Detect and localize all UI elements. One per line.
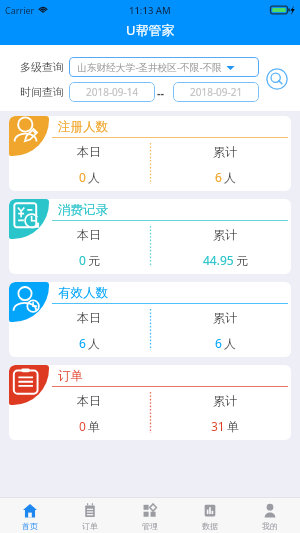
staticText: 2018-09-14 xyxy=(86,85,139,99)
staticText: 有效人数 xyxy=(58,285,108,301)
staticText: 消费记录 xyxy=(58,202,108,218)
staticText: 2018-09-21 xyxy=(190,85,243,99)
staticText: 6 xyxy=(79,335,86,351)
staticText: 订单 xyxy=(82,521,98,531)
staticText: 人 xyxy=(224,336,236,351)
staticText: 本日 xyxy=(77,310,101,325)
staticText: 累计 xyxy=(213,310,237,325)
staticText: 多级查询 xyxy=(20,60,64,74)
staticText: 44.95 xyxy=(203,252,234,268)
staticText: 首页 xyxy=(22,521,38,531)
staticText: 人 xyxy=(88,170,100,185)
button[interactable]: 管理 xyxy=(120,498,180,533)
button[interactable]: 山东财经大学-圣井校区-不限-不限 xyxy=(69,57,259,77)
staticText: 累计 xyxy=(213,227,237,242)
button[interactable]: Search xyxy=(266,68,288,90)
staticText: -- xyxy=(157,85,165,100)
staticText: 11:13 AM xyxy=(129,4,171,17)
staticText: 本日 xyxy=(77,144,101,159)
staticText: 时间查询 xyxy=(20,85,64,99)
staticText: 单 xyxy=(88,419,100,434)
staticText: U帮管家 xyxy=(126,21,175,39)
staticText: 0 xyxy=(79,169,86,185)
staticText: 元 xyxy=(236,253,248,268)
staticText: 人 xyxy=(224,170,236,185)
button[interactable]: 我的 xyxy=(240,498,300,533)
staticText: Carrier xyxy=(5,4,35,16)
staticText: 订单 xyxy=(58,368,83,384)
staticText: 0 xyxy=(79,418,86,434)
button[interactable]: 首页 xyxy=(0,498,60,533)
button[interactable]: 数据 xyxy=(180,498,240,533)
staticText: 6 xyxy=(215,335,222,351)
staticText: 管理 xyxy=(142,521,158,531)
staticText: 数据 xyxy=(202,521,218,531)
staticText: 本日 xyxy=(77,393,101,408)
staticText: 元 xyxy=(88,253,100,268)
staticText: 我的 xyxy=(262,521,278,531)
button[interactable]: 2018-09-14 xyxy=(69,82,155,102)
staticText: 0 xyxy=(79,252,86,268)
staticText: 本日 xyxy=(77,227,101,242)
staticText: 31 xyxy=(211,418,225,434)
button[interactable]: 注册人数 xyxy=(9,116,291,191)
button[interactable]: 订单 xyxy=(9,365,291,440)
button[interactable]: 有效人数 xyxy=(9,282,291,357)
staticText: 人 xyxy=(88,336,100,351)
button[interactable]: 2018-09-21 xyxy=(173,82,259,102)
staticText: 累计 xyxy=(213,393,237,408)
staticText: 6 xyxy=(215,169,222,185)
button[interactable]: 订单 xyxy=(60,498,120,533)
staticText: 单 xyxy=(227,419,239,434)
staticText: 注册人数 xyxy=(58,119,108,135)
staticText: 山东财经大学-圣井校区-不限-不限 xyxy=(77,61,222,74)
staticText: 累计 xyxy=(213,144,237,159)
button[interactable]: 消费记录 xyxy=(9,199,291,274)
